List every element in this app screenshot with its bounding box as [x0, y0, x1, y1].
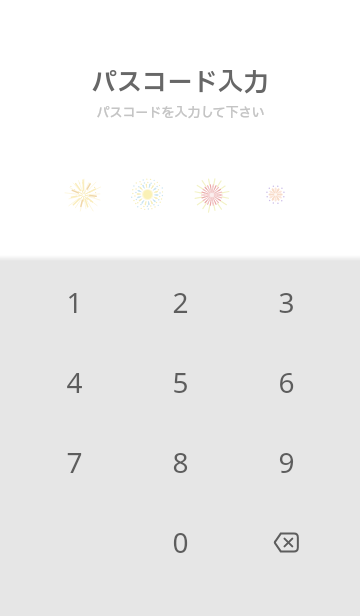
staticText: 4 [66, 363, 83, 401]
button[interactable]: 6 [233, 342, 339, 422]
button[interactable]: 7 [21, 422, 127, 502]
staticText: パスコードを入力して下さい [96, 103, 265, 121]
button[interactable]: 3 [233, 262, 339, 342]
staticText: 5 [172, 363, 189, 401]
staticText: 6 [278, 363, 295, 401]
button[interactable]: 4 [21, 342, 127, 422]
button[interactable]: 1 [21, 262, 127, 342]
button[interactable]: 8 [127, 422, 233, 502]
button[interactable]: Delete [233, 502, 339, 582]
button[interactable]: 9 [233, 422, 339, 502]
staticText: 3 [278, 283, 295, 321]
staticText: 7 [66, 443, 83, 481]
button[interactable]: 0 [127, 502, 233, 582]
staticText: 8 [172, 443, 189, 481]
staticText: パスコード入力 [91, 64, 269, 94]
staticText: 1 [66, 283, 83, 321]
staticText: 0 [172, 523, 189, 561]
staticText: 2 [172, 283, 189, 321]
staticText: 9 [278, 443, 295, 481]
button[interactable]: 5 [127, 342, 233, 422]
button[interactable]: 2 [127, 262, 233, 342]
other: Entered passcode digits [0, 155, 360, 235]
